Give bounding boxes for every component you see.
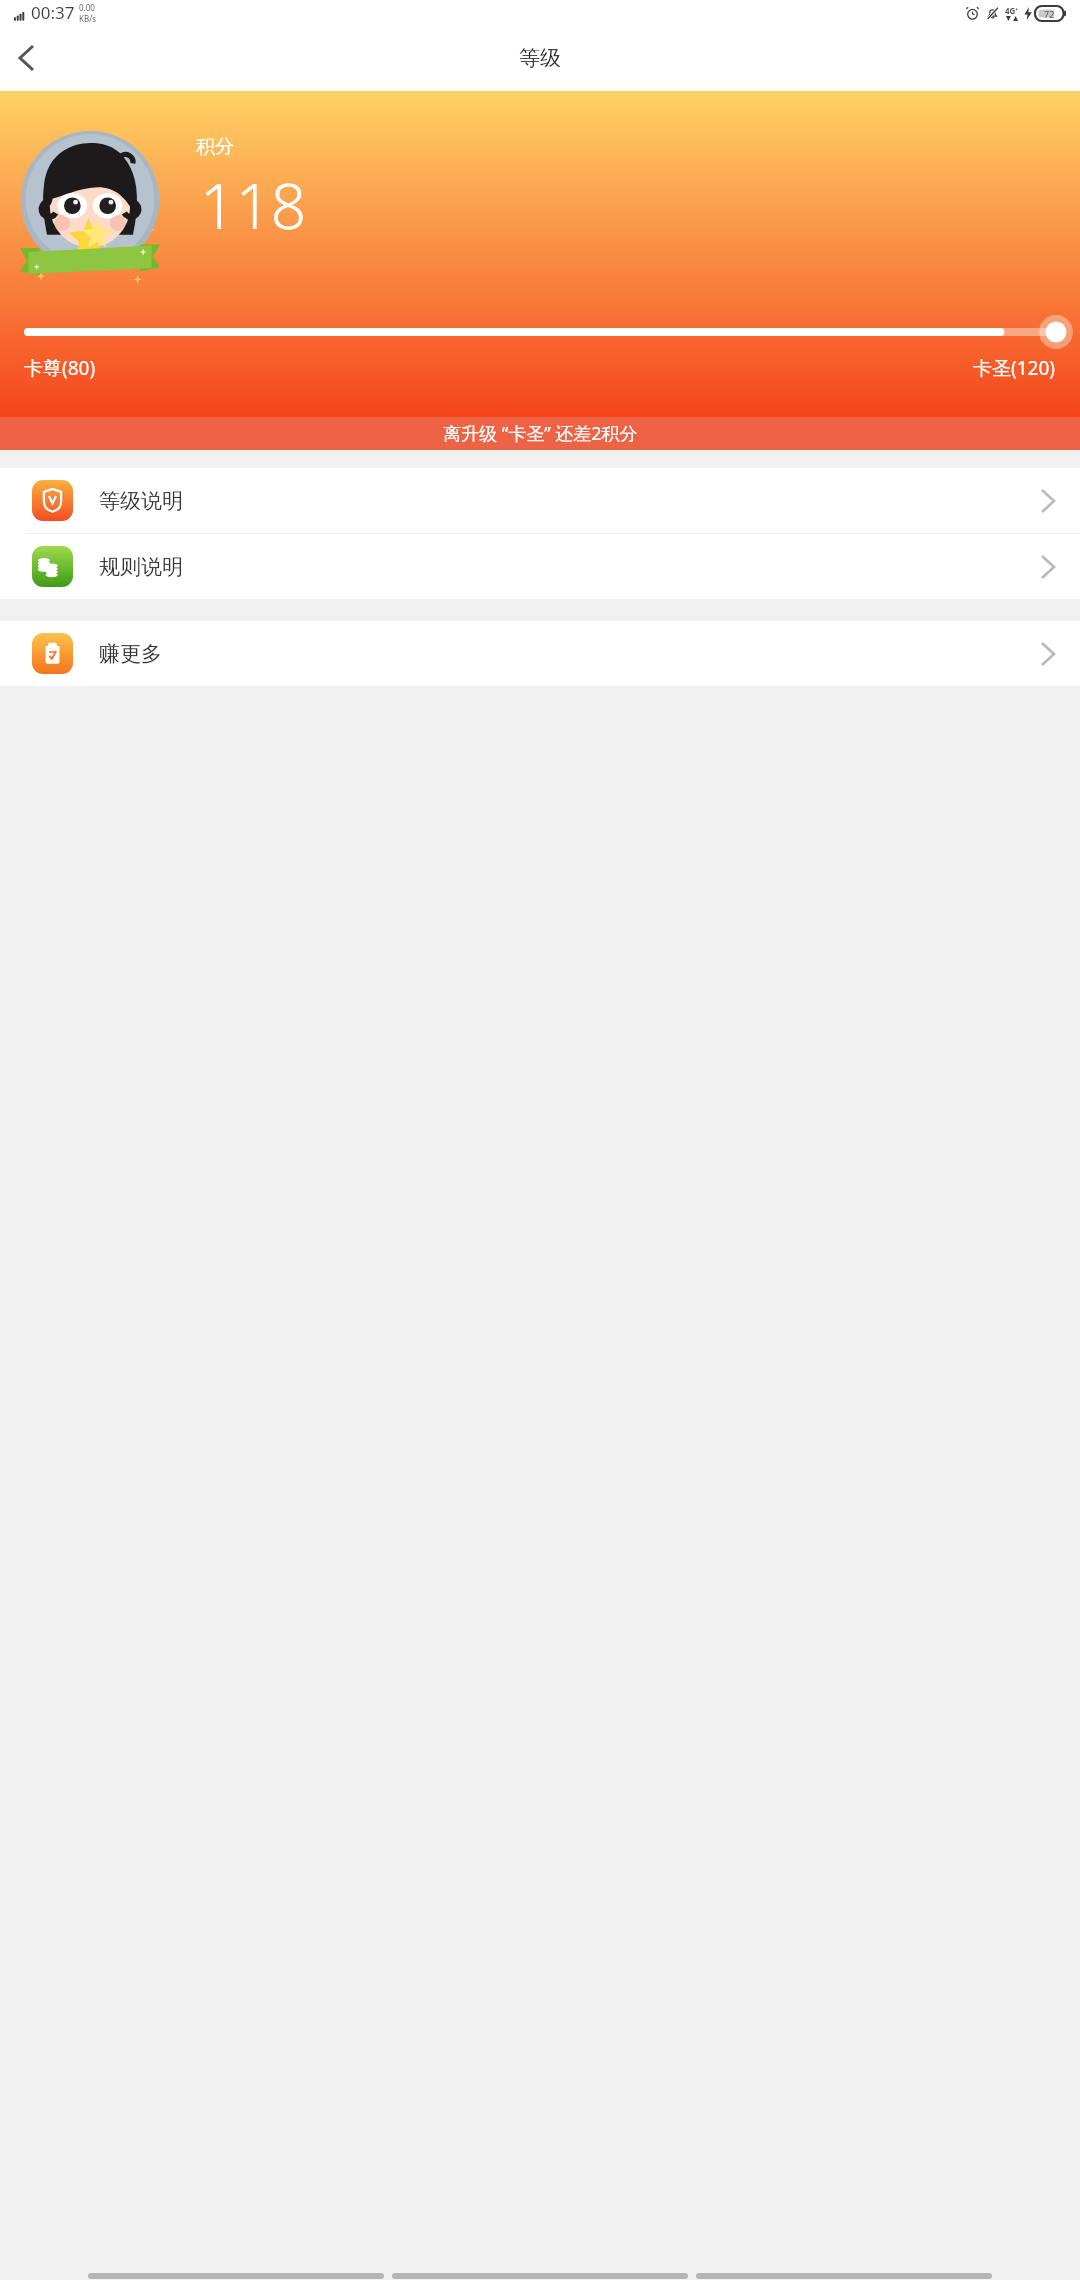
staticText: 0.00 [79, 2, 95, 13]
staticText: KB/s [79, 13, 96, 24]
staticText: 赚更多 [99, 641, 162, 667]
button[interactable]: 赚更多 [0, 621, 1080, 686]
staticText: 卡圣(120) [973, 355, 1056, 381]
button[interactable]: Back [0, 32, 52, 84]
staticText: 积分 [196, 135, 234, 159]
button[interactable]: 等级说明 [0, 468, 1080, 533]
staticText: 卡尊(80) [24, 355, 96, 381]
staticText: 118 [200, 163, 307, 247]
staticText: 离升级 “卡圣” 还差2积分 [443, 421, 638, 446]
staticText: 等级说明 [99, 488, 183, 514]
button[interactable]: 规则说明 [0, 534, 1080, 599]
staticText: 4G⁺ [1005, 5, 1019, 16]
staticText: 00:37 [31, 1, 75, 24]
staticText: 72 [1044, 8, 1055, 20]
staticText: 等级 [519, 45, 561, 71]
staticText: 规则说明 [99, 554, 183, 580]
